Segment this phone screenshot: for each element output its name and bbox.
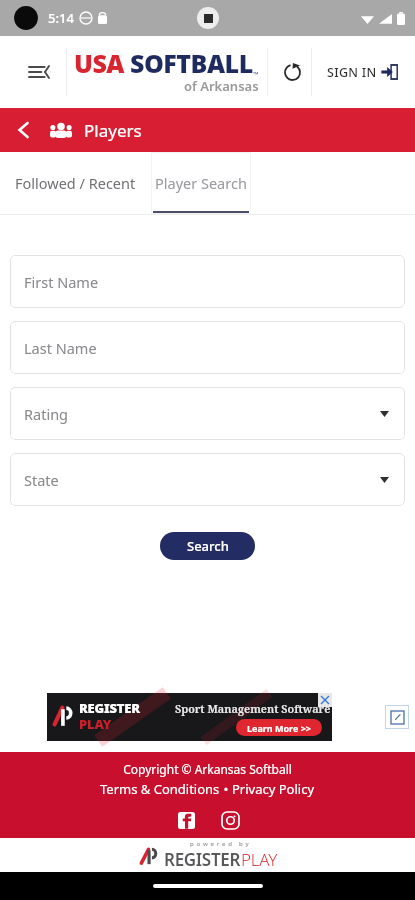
staticText: USA xyxy=(74,46,125,80)
staticText: Copyright © Arkansas Softball xyxy=(123,761,292,777)
button[interactable]: Instagram xyxy=(219,809,241,831)
staticText: 5:14 xyxy=(48,9,74,27)
staticText: p o w e r e d b y xyxy=(190,840,250,848)
button[interactable]: Facebook xyxy=(175,809,197,831)
button[interactable]: Player Search xyxy=(151,152,251,214)
button[interactable]: Close ad xyxy=(318,693,332,707)
staticText: Search xyxy=(187,537,229,555)
staticText: Players xyxy=(84,119,142,142)
staticText: Rating xyxy=(24,404,69,424)
button[interactable]: Followed / Recent xyxy=(0,152,151,214)
staticText: PLAY xyxy=(79,715,112,733)
button[interactable]: Open navigation menu xyxy=(22,55,56,89)
staticText: PLAY xyxy=(241,848,277,871)
button[interactable]: REGISTER xyxy=(47,693,332,741)
button[interactable]: Refresh xyxy=(274,54,310,90)
staticText: First Name xyxy=(24,272,99,292)
staticText: Last Name xyxy=(24,338,97,358)
staticText: Learn More >> xyxy=(247,722,311,734)
button[interactable]: SIGN IN xyxy=(323,55,403,89)
staticText: SOFTBALL xyxy=(130,46,253,80)
button[interactable]: Rating xyxy=(10,387,405,440)
button[interactable]: Terms & Conditions xyxy=(100,780,220,798)
button[interactable]: Learn More >> xyxy=(236,719,322,736)
staticText: REGISTER xyxy=(164,848,241,871)
staticText: Followed / Recent xyxy=(15,173,136,193)
button[interactable]: First Name xyxy=(10,255,405,308)
staticText: • xyxy=(220,780,232,798)
staticText: SIGN IN xyxy=(327,64,377,81)
button[interactable]: State xyxy=(10,453,405,506)
button[interactable]: Last Name xyxy=(10,321,405,374)
button[interactable]: Search xyxy=(160,532,255,560)
staticText: of Arkansas xyxy=(184,77,259,95)
staticText: REGISTER xyxy=(79,699,140,717)
staticText: Sport Management Software xyxy=(175,701,331,716)
staticText: Player Search xyxy=(155,173,247,193)
staticText: State xyxy=(24,470,59,490)
button[interactable]: Back xyxy=(6,112,42,148)
button[interactable]: Send feedback xyxy=(385,705,409,729)
staticText: ™ xyxy=(253,70,259,80)
button[interactable]: Privacy Policy xyxy=(232,780,315,798)
